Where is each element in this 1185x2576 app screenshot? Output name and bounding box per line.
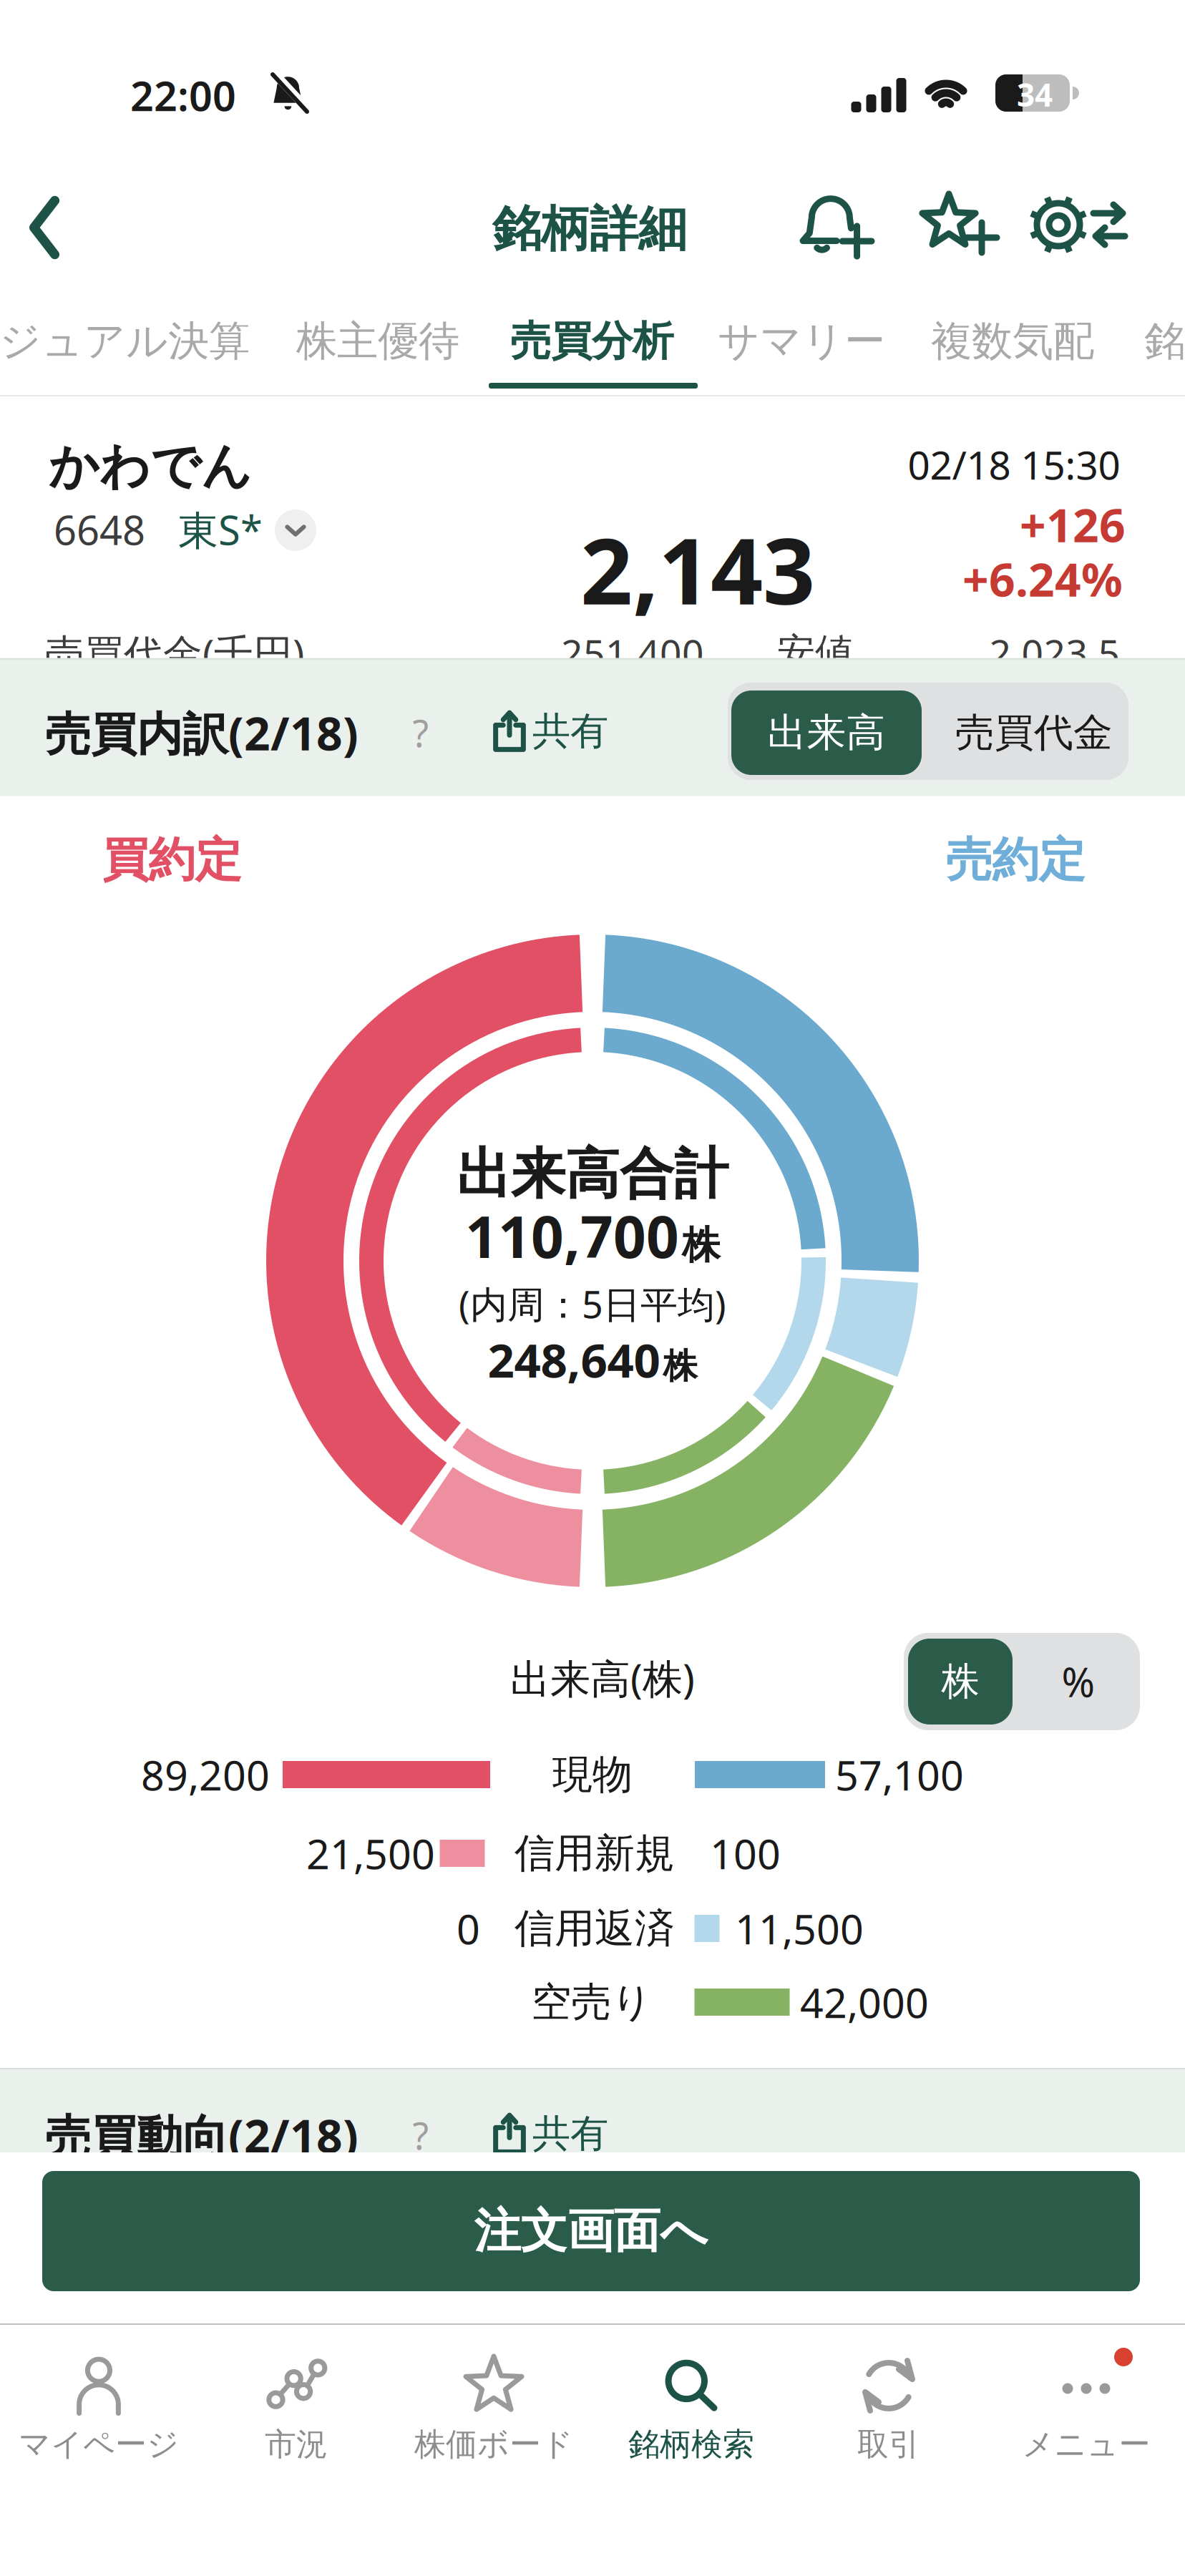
staticText: 複数気配 <box>931 316 1094 367</box>
staticText: マイページ <box>19 2425 179 2464</box>
staticText: 2,143 <box>580 508 815 630</box>
button[interactable]: 複数気配 <box>931 316 1094 367</box>
staticText: +126 <box>1020 494 1126 555</box>
staticText: 取引 <box>857 2425 920 2464</box>
staticText: 売買分析 <box>510 316 673 367</box>
staticText: 42,000 <box>800 1975 929 2029</box>
button[interactable]: メニュー <box>987 2342 1185 2478</box>
button[interactable]: 注文画面へ <box>42 2171 1140 2291</box>
button[interactable]: 株価ボード <box>395 2342 592 2478</box>
staticText: 21,500 <box>306 1826 435 1880</box>
button[interactable]: ヘルプ <box>413 2111 429 2160</box>
staticText: 売買代金(千円) <box>45 627 304 679</box>
staticText: 02/18 15:30 <box>908 438 1120 490</box>
staticText: メニュー <box>1022 2425 1150 2464</box>
staticText: ? <box>413 2111 429 2160</box>
staticText: 株 <box>941 1658 979 1705</box>
staticText: 248,640 <box>488 1329 660 1391</box>
button[interactable]: 戻る <box>26 198 63 257</box>
staticText: かわでん <box>49 436 252 497</box>
staticText: 11,500 <box>735 1901 864 1956</box>
staticText: % <box>1062 1655 1095 1708</box>
staticText: 34 <box>1017 74 1053 115</box>
button[interactable]: ジュアル決算 <box>0 316 250 367</box>
staticText: 22:00 <box>130 68 236 122</box>
staticText: 安値 <box>777 629 853 676</box>
staticText: 売買代金 <box>955 709 1113 757</box>
button[interactable]: 市況 <box>197 2342 395 2478</box>
staticText: 現物 <box>552 1750 633 1799</box>
staticText: サマリー <box>718 316 885 367</box>
button[interactable]: 共有 <box>494 708 608 755</box>
button[interactable]: 株主優待 <box>296 316 459 367</box>
staticText: 市況 <box>265 2425 328 2464</box>
staticText: 出来高(株) <box>510 1651 695 1705</box>
staticText: 株主優待 <box>296 316 459 367</box>
staticText: 100 <box>710 1826 781 1880</box>
staticText: 110,700 <box>465 1198 679 1274</box>
staticText: 銘柄詳細 <box>492 199 687 259</box>
staticText: 251,400 <box>561 627 704 678</box>
staticText: 57,100 <box>835 1747 964 1802</box>
staticText: 東S* <box>178 503 263 556</box>
staticText: ジュアル決算 <box>0 316 250 367</box>
staticText: 銘柄検索 <box>628 2425 754 2464</box>
button[interactable]: 株 <box>908 1639 1013 1724</box>
staticText: 信用返済 <box>515 1904 675 1953</box>
staticText: 注文画面へ <box>474 2202 708 2260</box>
staticText: 売買内訳(2/18) <box>45 702 359 763</box>
staticText: 89,200 <box>141 1747 270 1802</box>
button[interactable]: マイページ <box>0 2342 197 2478</box>
button[interactable]: 銘柄 <box>1144 316 1185 367</box>
button[interactable]: 設定 <box>1032 189 1126 260</box>
staticText: 売約定 <box>946 831 1085 889</box>
button[interactable]: サマリー <box>718 316 885 367</box>
button[interactable]: 銘柄検索 <box>592 2342 790 2478</box>
button[interactable]: % <box>1025 1639 1132 1724</box>
staticText: 株 <box>682 1222 720 1269</box>
staticText: 6648 <box>54 503 145 556</box>
staticText: +6.24% <box>962 548 1123 609</box>
staticText: 出来高合計 <box>457 1141 728 1208</box>
staticText: 0 <box>457 1901 480 1956</box>
staticText: 株価ボード <box>414 2425 573 2464</box>
staticText: 2,023.5 <box>989 627 1120 678</box>
button[interactable]: 売買分析 <box>510 316 673 367</box>
staticText: (内周：5日平均) <box>459 1279 726 1329</box>
button[interactable]: お気に入りに追加 <box>920 190 998 260</box>
button[interactable]: 売買代金 <box>934 691 1134 775</box>
staticText: 銘柄 <box>1144 316 1185 367</box>
staticText: 株 <box>663 1345 697 1387</box>
staticText: 信用新規 <box>515 1829 675 1878</box>
button[interactable]: 市場区分 <box>275 509 316 551</box>
staticText: 空売り <box>531 1978 652 2027</box>
staticText: 出来高 <box>767 709 886 757</box>
staticText: 買約定 <box>102 831 242 889</box>
staticText: ? <box>413 708 429 757</box>
button[interactable]: 出来高 <box>731 691 922 775</box>
staticText: 売買動向(2/18) <box>45 2105 359 2166</box>
button[interactable]: 共有 <box>494 2110 608 2157</box>
staticText: 共有 <box>532 2110 608 2157</box>
button[interactable]: 通知を追加 <box>800 190 873 260</box>
staticText: 共有 <box>532 708 608 755</box>
button[interactable]: 取引 <box>790 2342 987 2478</box>
button[interactable]: ヘルプ <box>413 708 429 757</box>
